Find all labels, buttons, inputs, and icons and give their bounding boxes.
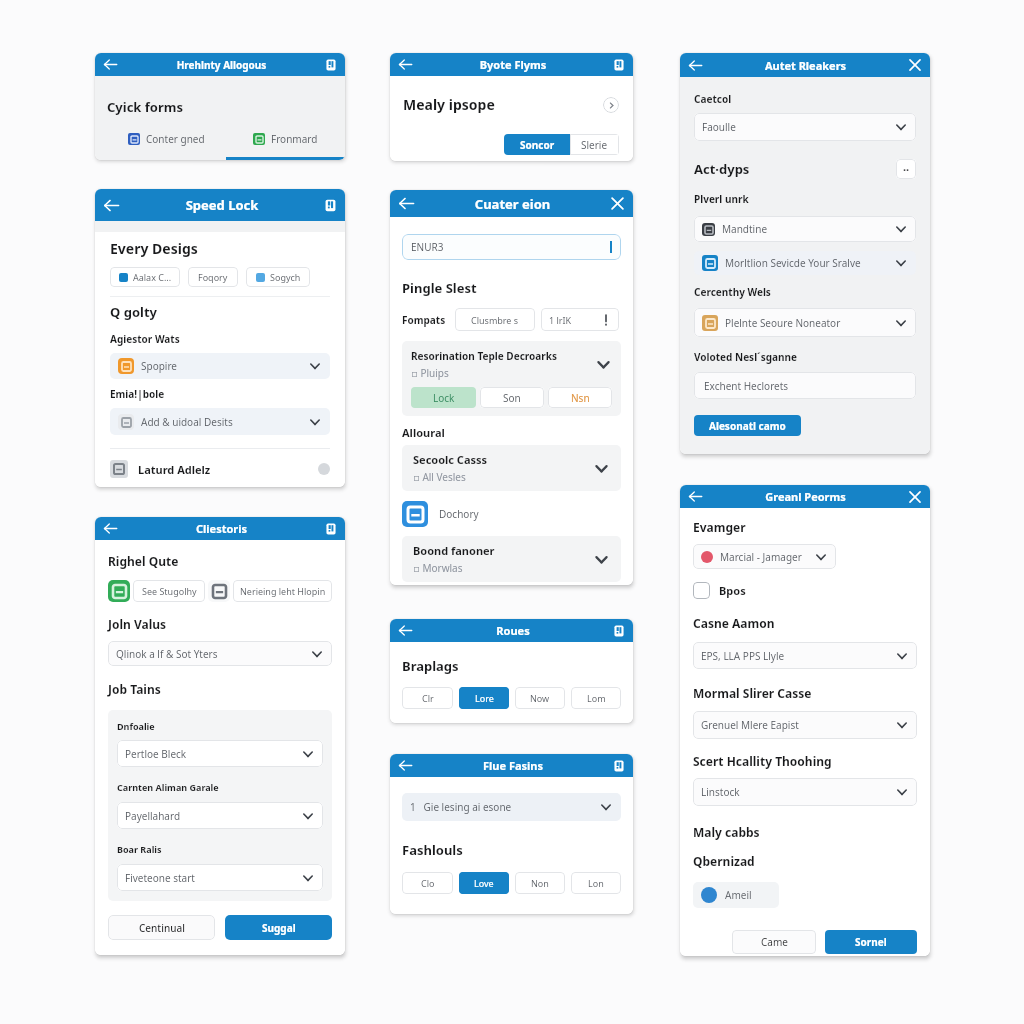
staticText: Spopire <box>141 359 308 373</box>
button[interactable]: Non <box>515 872 565 894</box>
staticText: Lock <box>433 391 455 405</box>
button[interactable]: Centinual <box>108 915 215 940</box>
button[interactable]: Laturd Adlelz <box>110 460 330 478</box>
button[interactable]: Dochory <box>402 501 479 527</box>
button[interactable]: Bpos <box>693 582 746 599</box>
button[interactable]: Back <box>398 57 413 72</box>
button[interactable]: Sornel <box>825 930 917 954</box>
staticText: 1 lrIK <box>549 314 601 326</box>
button[interactable]: Plelnte Seoure Noneator <box>694 308 916 337</box>
button[interactable]: Save <box>613 59 625 71</box>
button[interactable]: Payellahard <box>117 802 323 829</box>
button[interactable]: Son <box>480 387 544 408</box>
button[interactable]: Suggal <box>225 915 332 940</box>
button[interactable]: Back <box>398 623 413 638</box>
button[interactable]: Close <box>610 196 625 211</box>
button[interactable]: Save <box>324 199 337 212</box>
staticText: Fronmard <box>271 132 318 146</box>
button[interactable]: Back <box>103 57 118 72</box>
staticText: Nsn <box>571 391 590 405</box>
staticText: ▫ Morwlas <box>413 561 463 575</box>
button[interactable]: Clr <box>402 687 453 709</box>
staticText: Caetcol <box>694 92 732 106</box>
button[interactable]: Lock <box>411 387 476 408</box>
button[interactable]: Save <box>613 760 625 772</box>
staticText: EPS, LLA PPS Llyle <box>701 649 895 663</box>
button[interactable]: Spopire <box>110 353 330 379</box>
button[interactable]: Save <box>325 523 337 535</box>
button[interactable]: Lon <box>571 872 621 894</box>
button[interactable]: Faoulle <box>694 113 916 141</box>
button[interactable]: Back <box>688 58 703 73</box>
button[interactable]: Secoolc Casss <box>402 445 621 491</box>
button[interactable]: Pertloe Bleck <box>117 740 323 767</box>
staticText: ENUR3 <box>411 240 610 254</box>
button[interactable]: Ameil <box>693 882 779 908</box>
staticText: Roues <box>413 623 613 638</box>
button[interactable]: Back <box>398 758 413 773</box>
button[interactable]: Mandtine <box>694 216 916 242</box>
staticText: Emia!|bole <box>110 387 165 401</box>
button[interactable]: Open <box>603 97 619 113</box>
staticText: Ameil <box>725 888 752 902</box>
button[interactable]: Exchent Heclorets <box>694 372 916 399</box>
button[interactable]: Back <box>103 197 120 214</box>
staticText: Sogych <box>270 271 301 283</box>
staticText: ▫ All Vesles <box>413 470 466 484</box>
button[interactable]: Lore <box>459 687 509 709</box>
button[interactable]: Nsn <box>548 387 612 408</box>
button[interactable]: 1 Gie lesing ai esone <box>402 793 621 821</box>
button[interactable]: Lom <box>571 687 621 709</box>
button[interactable]: EPS, LLA PPS Llyle <box>693 642 917 669</box>
button[interactable]: Boond fanoner <box>402 536 621 582</box>
button[interactable]: Fronmard <box>226 132 345 160</box>
button[interactable]: See Stugolhy <box>133 580 205 602</box>
button[interactable]: Back <box>398 195 415 212</box>
button[interactable]: 1 lrIK <box>541 308 619 331</box>
staticText: Joln Valus <box>108 616 167 632</box>
button[interactable]: Foqory <box>188 267 238 287</box>
staticText: Hrehlnty Allogous <box>118 58 325 72</box>
button[interactable]: ENUR3 <box>402 234 621 260</box>
button[interactable]: Linstock <box>693 778 917 806</box>
button[interactable]: Came <box>732 930 816 954</box>
button[interactable]: Add & uidoal Desits <box>110 408 330 435</box>
button[interactable]: Sogych <box>246 267 310 287</box>
staticText: Maly cabbs <box>693 824 760 840</box>
button[interactable]: Back <box>103 521 118 536</box>
button[interactable]: Marcial - Jamager <box>693 544 836 569</box>
button[interactable]: Close <box>908 490 922 504</box>
button[interactable]: Love <box>459 872 509 894</box>
staticText: Cliestoris <box>118 521 325 536</box>
button[interactable]: Alesonatl camo <box>694 415 801 436</box>
staticText: ·· <box>903 162 910 177</box>
staticText: Plelnte Seoure Noneator <box>725 316 894 330</box>
button[interactable]: Now <box>515 687 565 709</box>
button[interactable]: Back <box>688 489 703 504</box>
button[interactable]: Aalax C... <box>110 267 180 287</box>
staticText: Mormal Slirer Casse <box>693 685 812 701</box>
button[interactable]: Clo <box>402 872 453 894</box>
button[interactable]: Grenuel Mlere Eapist <box>693 711 917 739</box>
button[interactable]: Nerieing leht Hlopin <box>233 580 332 602</box>
button[interactable]: Close <box>908 58 922 72</box>
button[interactable]: Resorination Teple Decroarks <box>411 349 612 380</box>
staticText: Greanl Peorms <box>703 489 908 504</box>
button[interactable]: Fiveteone start <box>117 864 323 891</box>
button[interactable]: More options <box>896 159 916 179</box>
staticText: Flue Fasins <box>413 758 613 773</box>
staticText: Foqory <box>198 271 228 283</box>
button[interactable]: Slerie <box>570 134 619 155</box>
button[interactable]: Save <box>613 625 625 637</box>
button[interactable]: Qlinok a lf & Sot Yters <box>108 641 332 666</box>
button[interactable]: Morltlion Sevicde Your Sralve <box>694 251 916 275</box>
button[interactable]: Clusmbre s <box>455 308 535 331</box>
staticText: Qlinok a lf & Sot Yters <box>116 647 310 661</box>
button[interactable]: Soncor <box>504 134 570 155</box>
button[interactable]: Conter gned <box>107 132 226 146</box>
staticText: Clr <box>422 692 434 704</box>
staticText: Mandtine <box>722 222 894 236</box>
button[interactable]: Save <box>325 59 337 71</box>
staticText: Lore <box>475 692 494 704</box>
staticText: Add & uidoal Desits <box>141 415 308 429</box>
